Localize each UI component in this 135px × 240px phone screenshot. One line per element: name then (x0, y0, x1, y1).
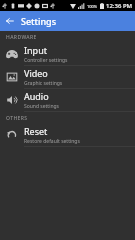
staticText: Graphic settings (24, 80, 63, 87)
staticText: OTHERS (6, 115, 28, 122)
button[interactable]: Back (3, 14, 17, 28)
staticText: Settings (21, 15, 57, 27)
staticText: 100% (87, 4, 98, 9)
staticText: Restore default settings (24, 138, 80, 145)
button[interactable]: Input (0, 43, 135, 65)
staticText: Input (24, 44, 47, 56)
staticText: 12:36 PM (106, 2, 133, 10)
staticText: Sound settings (24, 103, 60, 110)
button[interactable]: Audio (0, 89, 135, 111)
staticText: Audio (24, 90, 49, 102)
button[interactable]: Video (0, 66, 135, 88)
staticText: Controller settings (24, 57, 68, 64)
staticText: HARDWARE (6, 34, 37, 41)
staticText: Video (24, 67, 48, 79)
staticText: Reset (24, 125, 48, 137)
button[interactable]: Reset (0, 124, 135, 146)
